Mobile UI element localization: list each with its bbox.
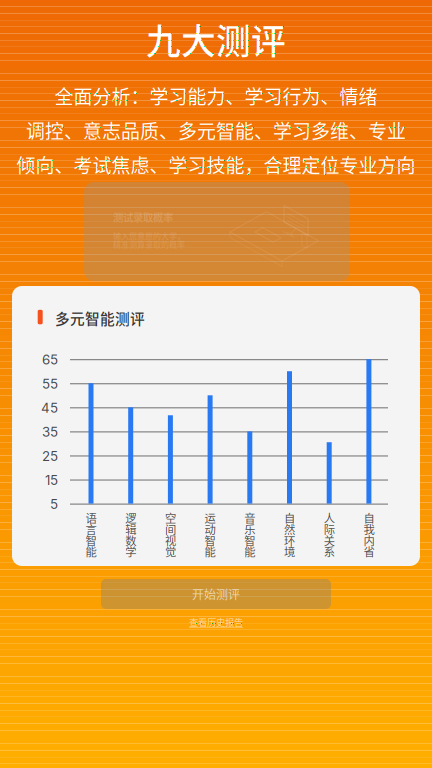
staticText: 言: [85, 521, 96, 537]
staticText: 系: [324, 543, 335, 560]
staticText: 九大测评: [146, 14, 286, 64]
staticText: 自: [284, 510, 295, 526]
staticText: 音: [244, 510, 255, 526]
staticText: 智: [244, 532, 255, 548]
staticText: 觉: [165, 543, 176, 560]
staticText: 逻: [125, 510, 136, 526]
staticText: 内: [363, 532, 374, 548]
staticText: 全面分析：学习能力、学习行为、情绪: [54, 82, 377, 109]
staticText: 环: [284, 532, 295, 548]
staticText: 乐: [244, 521, 255, 537]
staticText: 55: [42, 376, 58, 392]
staticText: 能: [85, 543, 96, 560]
button[interactable]: 查看历史报告: [166, 614, 266, 630]
staticText: 45: [41, 400, 58, 416]
staticText: 动: [205, 521, 216, 537]
staticText: 多元智能测评: [55, 307, 145, 329]
button[interactable]: 开始测评: [101, 579, 331, 609]
staticText: 自: [363, 510, 374, 526]
staticText: 省: [363, 543, 374, 560]
staticText: 智: [85, 532, 96, 548]
staticText: 倾向、考试焦虑、学习技能，合理定位专业方向: [16, 151, 415, 178]
staticText: 际: [324, 521, 335, 537]
staticText: 能: [205, 543, 216, 560]
staticText: 精准测算录取的概率: [113, 238, 185, 250]
staticText: 间: [165, 521, 176, 537]
staticText: 能: [244, 543, 255, 560]
staticText: 辑: [125, 521, 136, 537]
staticText: 学: [125, 543, 136, 560]
staticText: 开始测评: [192, 585, 240, 603]
staticText: 智: [205, 532, 216, 548]
staticText: 空: [165, 510, 176, 526]
staticText: 查看历史报告: [189, 615, 243, 629]
staticText: 65: [42, 352, 58, 368]
staticText: 数: [125, 532, 136, 548]
staticText: 然: [284, 521, 295, 537]
staticText: 境: [284, 543, 295, 560]
staticText: 15: [45, 472, 58, 488]
staticText: 人: [324, 510, 335, 526]
staticText: 语: [85, 510, 96, 526]
staticText: 输入您意愿的大学，: [113, 230, 185, 242]
staticText: 测试录取概率: [113, 209, 173, 224]
staticText: 5: [50, 496, 58, 512]
staticText: 我: [363, 521, 374, 537]
staticText: 关: [324, 532, 335, 548]
staticText: 运: [205, 510, 216, 526]
staticText: 视: [165, 532, 176, 548]
staticText: 调控、意志品质、多元智能、学习多维、专业: [26, 116, 406, 144]
staticText: 35: [42, 424, 58, 440]
staticText: 25: [42, 448, 58, 464]
